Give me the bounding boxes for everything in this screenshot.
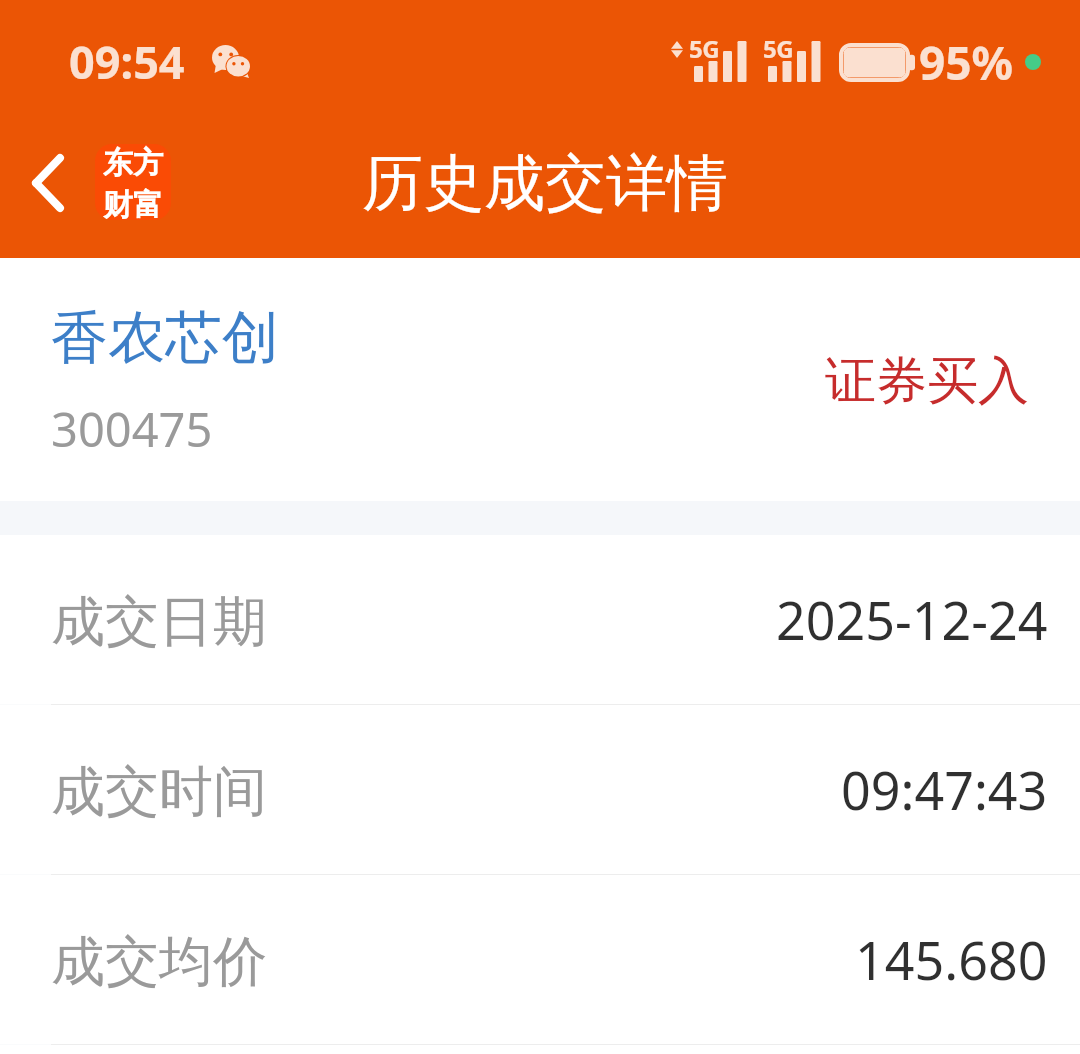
staticText: 2025-12-24 (776, 584, 1048, 655)
button[interactable]: Back (11, 147, 85, 219)
button[interactable]: 成交均价 (0, 875, 1080, 1044)
staticText: 09:47:43 (841, 754, 1048, 825)
staticText: 证券买入 (825, 349, 1029, 413)
staticText: 5G (763, 32, 794, 65)
staticText: 5G (689, 32, 720, 65)
staticText: 09:54 (69, 31, 185, 92)
button[interactable]: 香农芯创 (0, 258, 1080, 501)
staticText: 东方 (103, 144, 163, 182)
staticText: 财富 (103, 186, 163, 220)
staticText: 95% (919, 31, 1014, 94)
staticText: 成交时间 (51, 758, 267, 826)
button[interactable]: 成交日期 (0, 535, 1080, 704)
button[interactable]: 成交时间 (0, 705, 1080, 874)
staticText: 历史成交详情 (362, 145, 728, 222)
staticText: 香农芯创 (51, 302, 279, 374)
staticText: 成交日期 (51, 588, 267, 656)
button[interactable]: East Money logo (95, 144, 171, 220)
staticText: 成交均价 (51, 928, 267, 996)
staticText: 300475 (51, 397, 213, 461)
staticText: 145.680 (855, 924, 1048, 995)
